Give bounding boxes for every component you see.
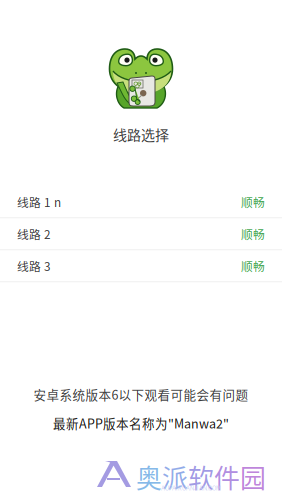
staticText: 最新APP版本名称为"Manwa2": [53, 414, 229, 432]
staticText: 顺畅: [241, 225, 265, 242]
staticText: 线路 2: [17, 225, 51, 242]
staticText: 线路 1 n: [17, 193, 61, 210]
staticText: 线路选择: [113, 124, 169, 144]
staticText: 件: [214, 458, 240, 495]
staticText: 软: [188, 458, 214, 495]
button[interactable]: 线路 1 n: [0, 186, 282, 218]
staticText: 顺畅: [241, 193, 265, 210]
button[interactable]: 线路 3: [0, 250, 282, 282]
staticText: 园: [240, 458, 266, 495]
staticText: 线路 3: [17, 257, 51, 274]
staticText: 奥: [136, 458, 162, 495]
staticText: 安卓系统版本6以下观看可能会有问题: [33, 385, 248, 403]
button[interactable]: 线路 2: [0, 218, 282, 250]
staticText: 顺畅: [241, 257, 265, 274]
staticText: AUPAIRUANJIAN.COM: [161, 485, 221, 492]
staticText: 派: [162, 458, 188, 495]
